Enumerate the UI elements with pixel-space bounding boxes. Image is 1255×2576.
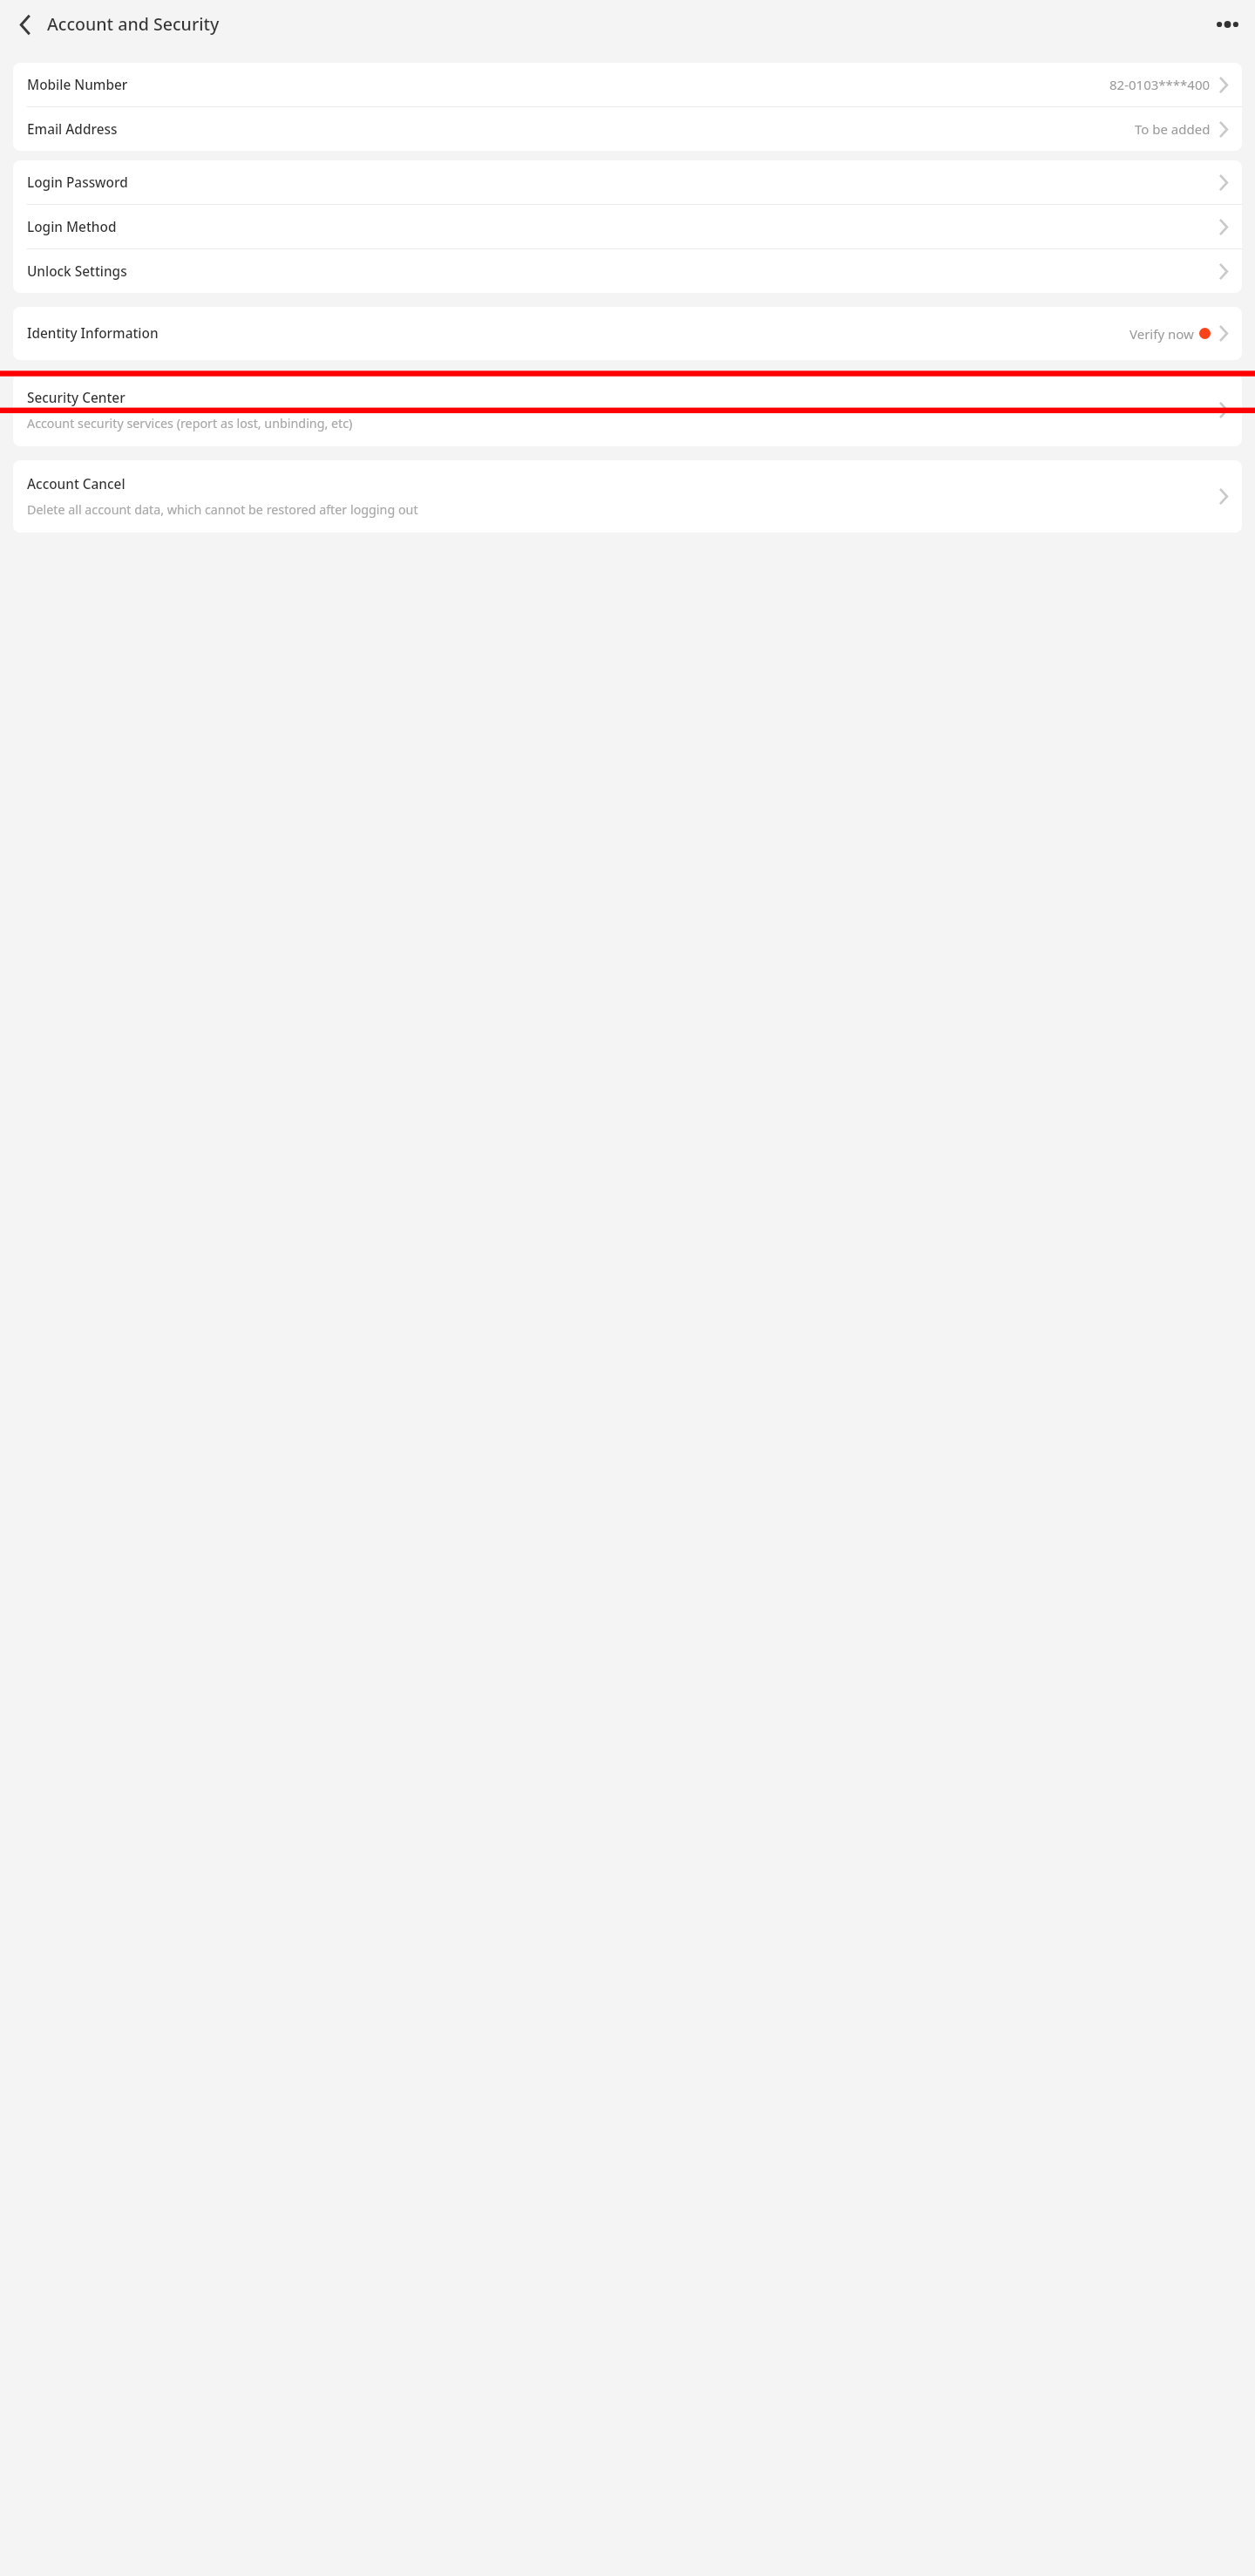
button[interactable]: Security Center: [13, 374, 1242, 446]
staticText: Email Address: [27, 120, 118, 139]
button[interactable]: More options: [1209, 6, 1245, 43]
button[interactable]: Email Address: [13, 107, 1242, 151]
staticText: Delete all account data, which cannot be…: [27, 501, 418, 518]
staticText: Account security services (report as los…: [27, 415, 353, 432]
staticText: Account and Security: [47, 12, 220, 36]
staticText: Security Center: [27, 389, 125, 407]
staticText: Login Password: [27, 173, 128, 192]
button[interactable]: Login Method: [13, 205, 1242, 248]
staticText: Account Cancel: [27, 475, 125, 493]
staticText: Identity Information: [27, 324, 159, 343]
button[interactable]: Unlock Settings: [13, 249, 1242, 293]
button[interactable]: Mobile Number: [13, 63, 1242, 106]
staticText: Verify now: [1129, 325, 1194, 343]
button[interactable]: Account Cancel: [13, 460, 1242, 533]
button[interactable]: Identity Information: [13, 307, 1242, 360]
staticText: To be added: [1135, 120, 1211, 138]
staticText: Unlock Settings: [27, 262, 127, 281]
button[interactable]: Login Password: [13, 160, 1242, 204]
button[interactable]: Back: [10, 9, 41, 40]
staticText: 82‑0103****400: [1109, 76, 1211, 93]
staticText: Login Method: [27, 218, 117, 236]
staticText: Mobile Number: [27, 76, 128, 94]
